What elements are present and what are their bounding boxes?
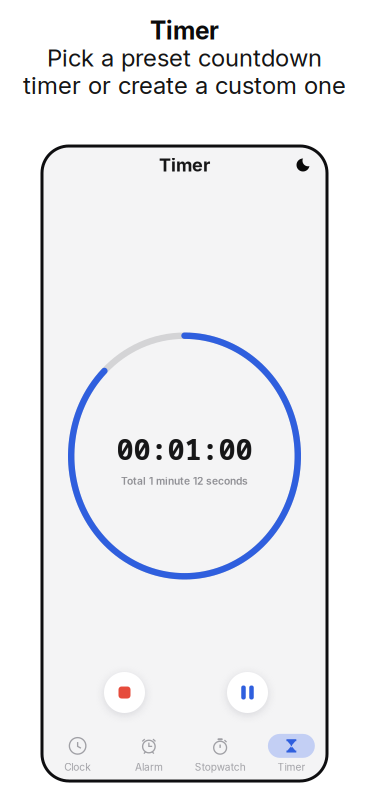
staticText: Clock: [64, 761, 91, 773]
staticText: Timer: [159, 154, 210, 176]
staticText: Stopwatch: [195, 761, 246, 773]
button[interactable]: Alarm: [113, 728, 184, 782]
staticText: Timer: [150, 16, 219, 45]
button[interactable]: Stopwatch: [184, 728, 256, 782]
staticText: timer or create a custom one: [23, 71, 346, 100]
button[interactable]: Pause: [227, 672, 268, 713]
button[interactable]: Timer: [256, 728, 327, 782]
button[interactable]: Stop: [104, 672, 145, 713]
staticText: Total 1 minute 12 seconds: [121, 475, 248, 487]
staticText: Alarm: [135, 761, 163, 773]
staticText: 00:01:00: [116, 429, 252, 468]
staticText: Timer: [277, 761, 305, 773]
button[interactable]: Clock: [42, 728, 113, 782]
staticText: Pick a preset countdown: [47, 43, 322, 72]
button[interactable]: Appearance: [290, 152, 316, 178]
